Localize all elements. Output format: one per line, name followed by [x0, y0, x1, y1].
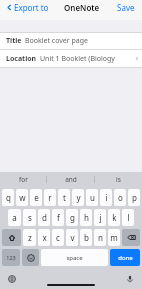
staticText: t	[63, 192, 66, 203]
staticText: j	[99, 212, 102, 223]
button[interactable]: done	[110, 249, 140, 266]
button[interactable]: and	[47, 172, 94, 186]
button[interactable]: is	[95, 172, 142, 186]
button[interactable]: s	[23, 209, 36, 226]
button[interactable]: Shift	[2, 229, 21, 246]
staticText: h	[84, 212, 89, 223]
staticText: space	[66, 254, 83, 262]
button[interactable]: c	[52, 229, 64, 246]
staticText: for	[19, 175, 28, 184]
staticText: a	[12, 212, 17, 223]
button[interactable]: k	[108, 209, 120, 226]
staticText: done	[118, 254, 133, 262]
staticText: k	[112, 212, 117, 223]
staticText: e	[34, 192, 39, 203]
button[interactable]: d	[38, 209, 50, 226]
staticText: s	[28, 212, 32, 223]
staticText: Export to	[14, 2, 49, 13]
staticText: g	[70, 212, 75, 223]
button[interactable]: Save	[114, 0, 138, 15]
button[interactable]: Export to	[4, 0, 51, 15]
staticText: Title	[6, 36, 22, 46]
button[interactable]: h	[80, 209, 92, 226]
button[interactable]: for	[0, 172, 46, 186]
button[interactable]: Dictate	[124, 273, 136, 285]
button[interactable]: Backspace	[122, 229, 140, 246]
staticText: u	[90, 192, 95, 203]
staticText: Booklet cover page	[25, 36, 89, 46]
button[interactable]: p	[128, 189, 140, 206]
staticText: is	[116, 175, 121, 184]
button[interactable]: 123	[2, 249, 20, 266]
button[interactable]: Title	[0, 33, 142, 49]
staticText: n	[98, 232, 103, 243]
staticText: l	[127, 212, 130, 223]
staticText: v	[70, 232, 75, 243]
staticText: c	[56, 232, 60, 243]
button[interactable]: m	[108, 229, 120, 246]
staticText: f	[57, 212, 60, 223]
button[interactable]: y	[72, 189, 84, 206]
staticText: Unit 1 Booklet (Biology Teache...	[40, 54, 137, 64]
button[interactable]: l	[122, 209, 134, 226]
staticText: and	[65, 175, 77, 184]
button[interactable]: o	[114, 189, 126, 206]
staticText: w	[19, 192, 26, 203]
staticText: m	[110, 232, 118, 243]
button[interactable]: e	[30, 189, 42, 206]
button[interactable]: v	[66, 229, 78, 246]
button[interactable]: f	[52, 209, 64, 226]
staticText: z	[28, 232, 32, 243]
staticText: i	[105, 192, 108, 203]
staticText: 123	[6, 254, 16, 261]
button[interactable]: Change keyboard	[6, 273, 18, 285]
staticText: p	[132, 192, 137, 203]
button[interactable]: r	[44, 189, 56, 206]
staticText: x	[42, 232, 47, 243]
button[interactable]: i	[100, 189, 112, 206]
button[interactable]: Emoji	[22, 249, 39, 266]
button[interactable]: a	[8, 209, 21, 226]
button[interactable]: x	[38, 229, 50, 246]
staticText: Location	[6, 54, 37, 64]
staticText: Save	[117, 2, 135, 13]
button[interactable]: z	[23, 229, 36, 246]
staticText: b	[84, 232, 89, 243]
button[interactable]: q	[2, 189, 14, 206]
button[interactable]: b	[80, 229, 92, 246]
staticText: d	[42, 212, 47, 223]
button[interactable]: w	[16, 189, 28, 206]
staticText: q	[6, 192, 11, 203]
button[interactable]: n	[94, 229, 106, 246]
button[interactable]: j	[94, 209, 106, 226]
button[interactable]: space	[41, 249, 108, 266]
staticText: y	[76, 192, 81, 203]
button[interactable]: g	[66, 209, 78, 226]
staticText: OneNote	[64, 2, 100, 13]
button[interactable]: Location	[0, 50, 142, 67]
button[interactable]: u	[86, 189, 98, 206]
button[interactable]: t	[58, 189, 70, 206]
staticText: o	[118, 192, 123, 203]
staticText: r	[48, 192, 52, 203]
